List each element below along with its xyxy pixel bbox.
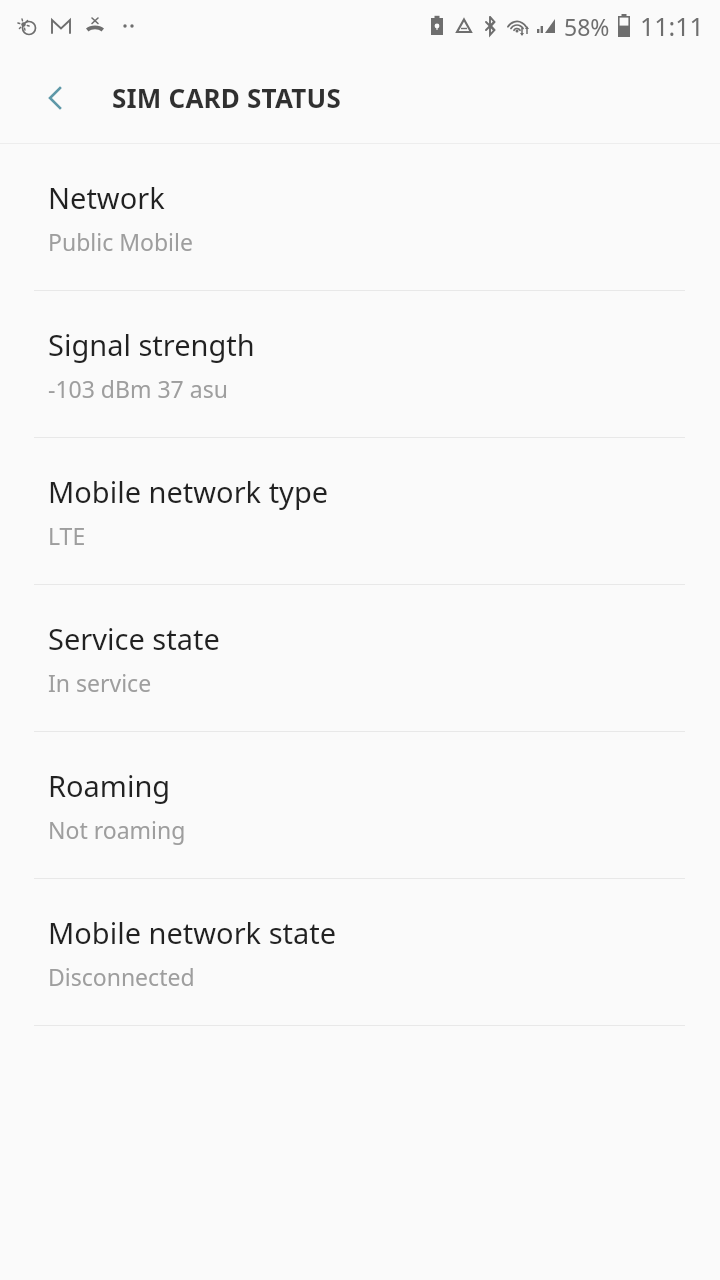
- staticText: 11:11: [640, 9, 704, 43]
- staticText: Public Mobile: [48, 226, 193, 257]
- staticText: Disconnected: [48, 961, 195, 992]
- staticText: -103 dBm 37 asu: [48, 373, 228, 404]
- staticText: In service: [48, 667, 152, 698]
- staticText: LTE: [48, 520, 86, 551]
- staticText: Not roaming: [48, 814, 186, 845]
- staticText: Mobile network type: [48, 472, 329, 511]
- button[interactable]: Network: [0, 144, 720, 290]
- staticText: SIM CARD STATUS: [112, 80, 341, 115]
- staticText: Roaming: [48, 766, 171, 805]
- button[interactable]: Back: [22, 64, 90, 132]
- button[interactable]: Roaming: [0, 732, 720, 878]
- staticText: 58%: [564, 11, 610, 42]
- staticText: Mobile network state: [48, 913, 337, 952]
- staticText: Network: [48, 178, 165, 217]
- button[interactable]: Mobile network type: [0, 438, 720, 584]
- button[interactable]: Mobile network state: [0, 879, 720, 1025]
- button[interactable]: Signal strength: [0, 291, 720, 437]
- button[interactable]: Service state: [0, 585, 720, 731]
- staticText: Service state: [48, 619, 220, 658]
- staticText: Signal strength: [48, 325, 255, 364]
